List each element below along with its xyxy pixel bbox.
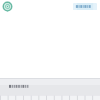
button[interactable]: Home bbox=[2, 1, 13, 12]
button[interactable] bbox=[73, 3, 97, 10]
button[interactable]: Footer label bbox=[9, 84, 31, 89]
